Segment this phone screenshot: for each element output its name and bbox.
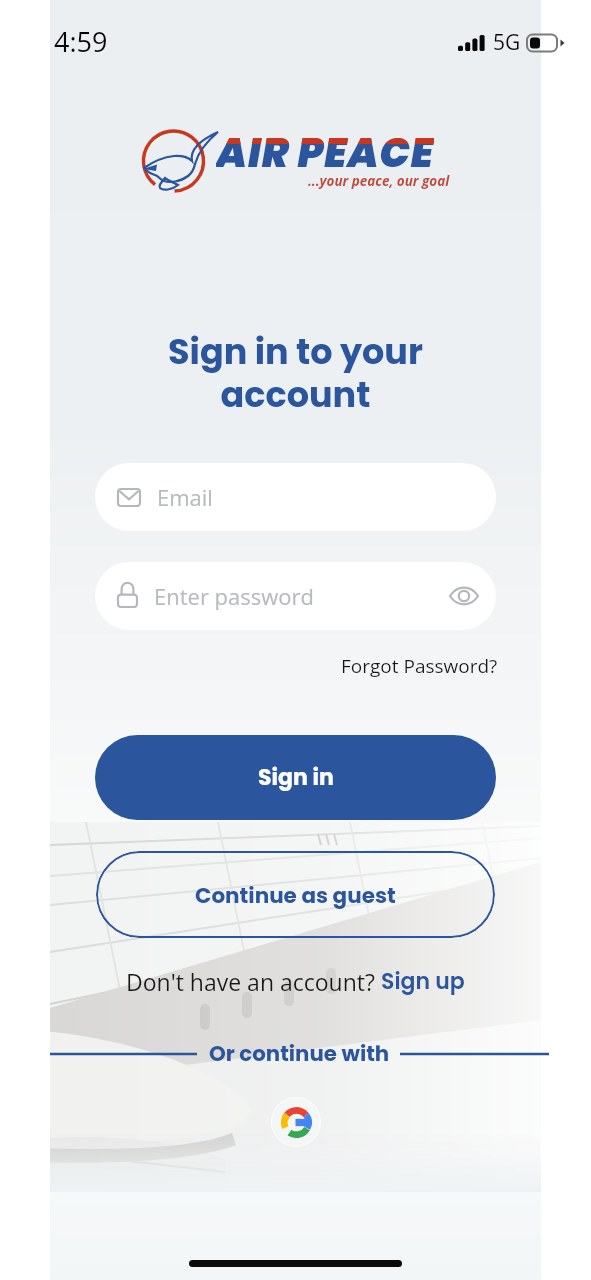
button[interactable]: Forgot Password? [338, 650, 501, 682]
staticText: 5G [493, 28, 521, 57]
staticText: 4:59 [54, 23, 108, 60]
staticText: Email [157, 482, 213, 512]
staticText: Continue as guest [195, 880, 396, 910]
button[interactable]: Enter password [95, 562, 496, 630]
staticText: AIR PEACE [216, 125, 434, 171]
staticText: Or continue with [209, 1039, 390, 1069]
button[interactable]: Continue with Google [271, 1097, 321, 1147]
staticText: AIR PEACE [216, 125, 434, 144]
staticText: Sign in [258, 762, 334, 793]
button[interactable]: Sign up [381, 966, 465, 997]
button[interactable]: Sign in [95, 735, 496, 820]
staticText: Enter password [154, 581, 315, 611]
button[interactable]: Continue as guest [96, 851, 495, 938]
button[interactable]: Show password [444, 576, 484, 616]
button[interactable]: Email [95, 463, 496, 531]
staticText: Sign in to your account [50, 327, 541, 419]
staticText: ...your peace, our goal [308, 172, 450, 190]
staticText: Don't have an account? [126, 966, 381, 997]
staticText: Sign up [381, 966, 465, 997]
staticText: Forgot Password? [341, 653, 498, 679]
